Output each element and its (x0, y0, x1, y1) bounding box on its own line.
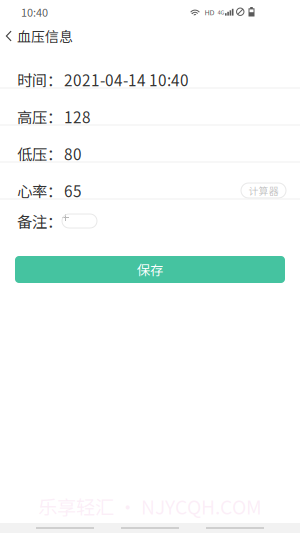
button[interactable]: Back (3, 24, 15, 48)
staticText: 80 (64, 142, 82, 165)
staticText: 高压： (17, 105, 62, 128)
staticText: 10:40 (21, 4, 48, 20)
staticText: 4G (217, 8, 224, 16)
button[interactable]: Add remark (62, 214, 97, 228)
staticText: 128 (64, 105, 91, 128)
staticText: 备注： (17, 210, 62, 232)
button[interactable]: 计算器 (241, 183, 286, 198)
staticText: 乐享轻汇 · NJYCQH.COM (38, 492, 262, 520)
staticText: 血压信息 (17, 26, 73, 46)
staticText: 低压： (17, 142, 62, 165)
staticText: 保存 (137, 260, 163, 279)
staticText: HD (204, 7, 214, 17)
staticText: 时间： (17, 68, 62, 91)
staticText: 心率： (17, 179, 62, 202)
staticText: 计算器 (248, 183, 278, 198)
staticText: 65 (64, 179, 82, 202)
staticText: 2021-04-14 10:40 (64, 68, 189, 91)
button[interactable]: 保存 (15, 256, 285, 283)
